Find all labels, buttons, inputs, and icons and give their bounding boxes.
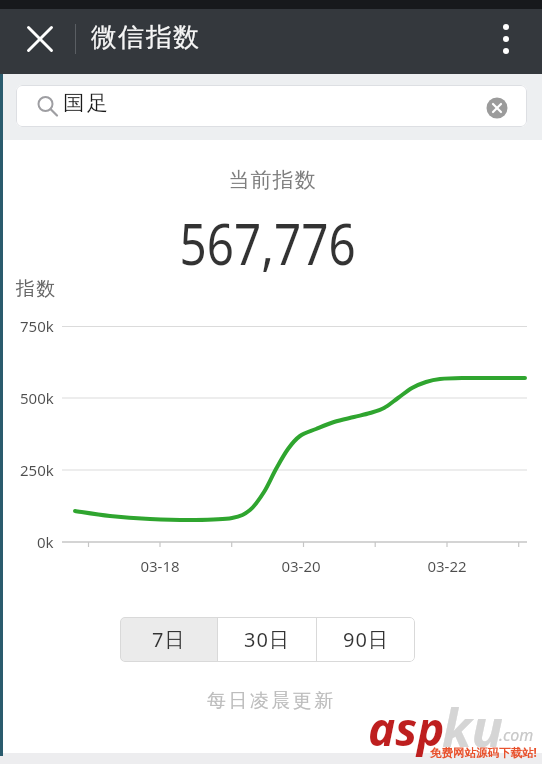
staticText: 03-18 bbox=[140, 556, 180, 576]
staticText: asp bbox=[368, 697, 445, 760]
staticText: 0k bbox=[37, 532, 54, 552]
staticText: 微信指数 bbox=[90, 21, 200, 54]
button[interactable]: 国足 bbox=[16, 85, 527, 127]
staticText: 90日 bbox=[343, 626, 389, 653]
button[interactable] bbox=[486, 17, 526, 67]
staticText: 250k bbox=[20, 460, 54, 480]
staticText: 03-22 bbox=[427, 556, 467, 576]
staticText: 03-20 bbox=[281, 556, 321, 576]
staticText: 每日凌晨更新 bbox=[207, 689, 336, 713]
staticText: 750k bbox=[20, 316, 54, 336]
staticText: 567,776 bbox=[180, 205, 356, 281]
staticText: 30日 bbox=[244, 626, 290, 653]
staticText: 指数 bbox=[15, 277, 56, 301]
staticText: 国足 bbox=[62, 90, 109, 116]
button[interactable] bbox=[20, 19, 60, 59]
staticText: 免费网站源码下载站! bbox=[430, 745, 537, 761]
button[interactable]: 90日 bbox=[317, 617, 415, 662]
staticText: 500k bbox=[20, 388, 54, 408]
button[interactable]: 7日 bbox=[120, 617, 217, 662]
button[interactable] bbox=[482, 93, 512, 123]
button[interactable]: 30日 bbox=[218, 617, 316, 662]
staticText: ku bbox=[442, 691, 503, 762]
staticText: .com bbox=[499, 724, 534, 746]
staticText: 7日 bbox=[152, 626, 186, 653]
staticText: 当前指数 bbox=[228, 167, 316, 193]
